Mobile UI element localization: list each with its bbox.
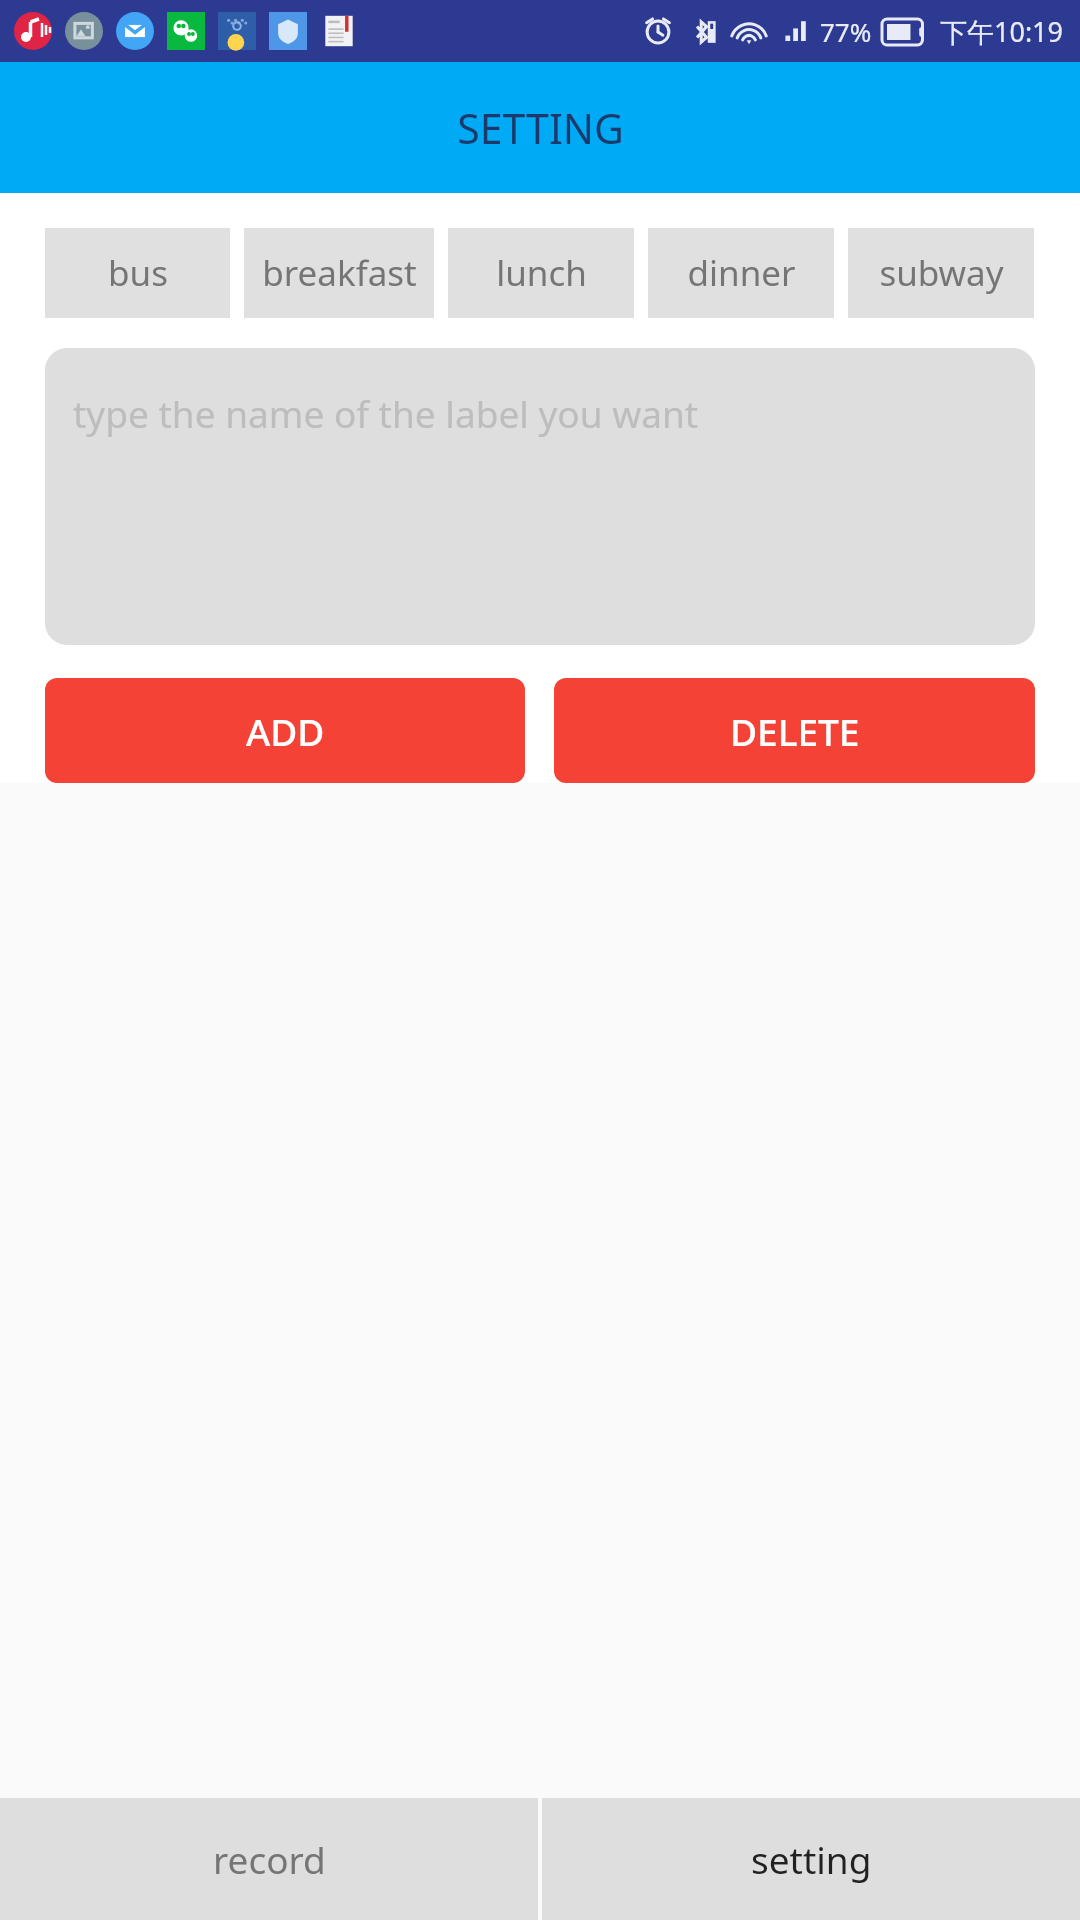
button[interactable]: type the name of the label you want	[45, 348, 1035, 645]
staticText: dinner	[687, 249, 796, 297]
staticText: breakfast	[262, 249, 417, 297]
staticText: record	[213, 1834, 326, 1884]
staticText: ADD	[246, 706, 325, 756]
button[interactable]: lunch	[448, 228, 634, 318]
staticText: subway	[879, 249, 1004, 297]
staticText: DELETE	[730, 706, 860, 756]
button[interactable]: breakfast	[244, 228, 434, 318]
staticText: 77%	[820, 14, 872, 49]
staticText: setting	[751, 1834, 872, 1884]
staticText: lunch	[496, 249, 587, 297]
staticText: 下午10:19	[940, 13, 1064, 50]
staticText: SETTING	[457, 100, 624, 156]
button[interactable]: ADD	[45, 678, 525, 783]
button[interactable]: dinner	[648, 228, 834, 318]
button[interactable]: setting	[542, 1798, 1080, 1920]
button[interactable]: DELETE	[554, 678, 1035, 783]
button[interactable]: record	[0, 1798, 538, 1920]
button[interactable]: subway	[848, 228, 1034, 318]
staticText: bus	[108, 249, 168, 297]
button[interactable]: bus	[45, 228, 230, 318]
staticText: type the name of the label you want	[73, 388, 699, 438]
